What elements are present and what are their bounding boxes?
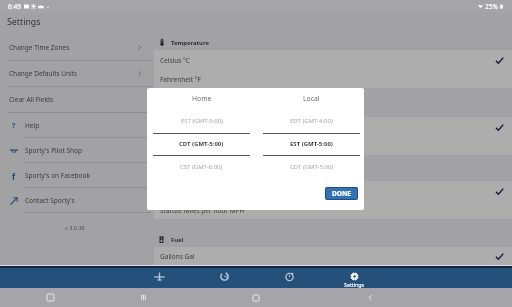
button[interactable]: Flight [127, 268, 192, 288]
button[interactable]: Timer [257, 268, 322, 288]
staticText: CDT (GMT-5:00) [179, 140, 224, 148]
button[interactable]: Contact Sporty's [0, 188, 154, 212]
staticText: Clear All Fields [9, 95, 54, 104]
button[interactable]: Settings [322, 268, 387, 288]
staticText: EST (GMT-5:00) [290, 140, 333, 148]
button[interactable]: Nautical Miles NM [154, 117, 512, 136]
staticText: CST (GMT-6:00) [180, 163, 223, 171]
staticText: Sporty's on Facebook [25, 171, 90, 180]
button[interactable]: DONE [326, 188, 357, 199]
staticText: Fahrenheit °F [160, 75, 201, 84]
button[interactable]: Fahrenheit °F [154, 69, 512, 88]
button[interactable]: f [0, 163, 154, 187]
button[interactable]: Statute Miles per hour MPH [154, 200, 512, 219]
button[interactable]: Change Time Zones [0, 35, 154, 60]
staticText: v 3.0.36 [65, 224, 85, 231]
staticText: Fuel [171, 236, 184, 244]
button[interactable]: Knots KTS [154, 181, 512, 200]
staticText: Change Defaults Units [9, 69, 78, 78]
staticText: CDT (GMT-5:00) [290, 163, 334, 171]
staticText: ? [12, 121, 16, 130]
button[interactable]: Gallons Gal [154, 247, 512, 265]
staticText: EST (GMT-5:00) [181, 117, 223, 125]
staticText: Help [25, 121, 40, 130]
staticText: DONE [332, 189, 351, 198]
button[interactable]: Statute Miles SM [154, 136, 512, 155]
staticText: Settings [7, 16, 41, 28]
staticText: Change Time Zones [9, 43, 70, 52]
staticText: 6:49 [8, 2, 21, 11]
button[interactable]: E6B [192, 268, 257, 288]
staticText: Local [303, 94, 320, 103]
staticText: Statute Miles SM [160, 142, 211, 151]
button[interactable]: Celsius °C [154, 50, 512, 69]
button[interactable]: Change Defaults Units [0, 61, 154, 86]
button[interactable]: Clear All Fields [0, 87, 154, 112]
button[interactable]: ? [0, 113, 154, 137]
button[interactable]: Sporty's Pilot Shop [0, 138, 154, 162]
staticText: 25% [485, 2, 498, 11]
staticText: Celsius °C [160, 56, 190, 65]
staticText: Settings [344, 281, 365, 288]
staticText: Statute Miles per hour MPH [160, 206, 245, 215]
staticText: Sporty's Pilot Shop [25, 146, 82, 155]
staticText: f [12, 171, 16, 180]
staticText: Contact Sporty's [25, 196, 75, 205]
staticText: Temperature [171, 39, 209, 47]
staticText: Gallons Gal [160, 252, 195, 261]
staticText: EDT (GMT-4:00) [290, 117, 333, 125]
staticText: Home [192, 94, 212, 103]
